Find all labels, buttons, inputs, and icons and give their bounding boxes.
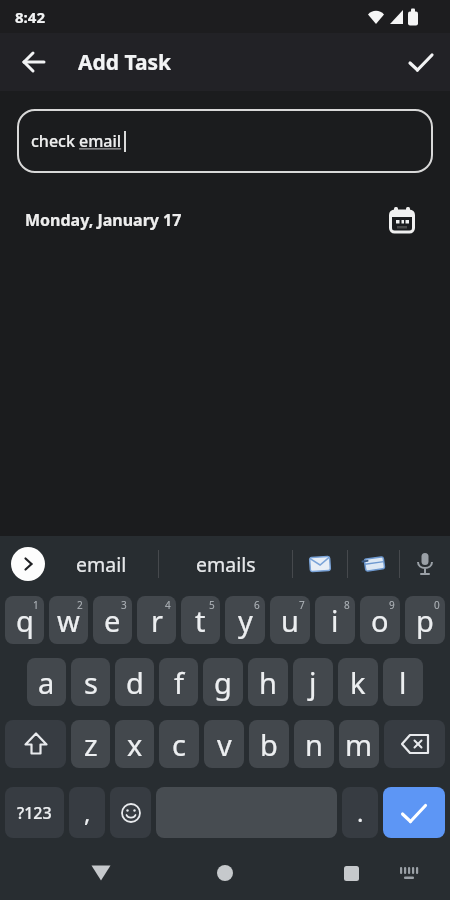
staticText: e xyxy=(104,601,121,640)
button[interactable]: t xyxy=(181,596,220,644)
staticText: 5 xyxy=(209,598,215,612)
staticText: z xyxy=(84,725,98,764)
button[interactable]: Monday, January 17 xyxy=(0,206,450,234)
button[interactable]: q xyxy=(5,596,44,644)
button[interactable] xyxy=(348,536,399,592)
button[interactable]: email xyxy=(45,536,158,592)
staticText: s xyxy=(84,663,98,702)
button[interactable]: , xyxy=(69,787,105,838)
staticText: a xyxy=(38,663,55,702)
staticText: 7 xyxy=(299,598,305,612)
staticText: l xyxy=(399,663,407,702)
staticText: v xyxy=(217,725,232,764)
button[interactable] xyxy=(5,720,66,768)
staticText: g xyxy=(214,663,232,702)
staticText: check email xyxy=(31,130,122,152)
staticText: ?123 xyxy=(17,802,52,824)
button[interactable]: p xyxy=(405,596,445,644)
button[interactable]: l xyxy=(383,658,423,706)
button[interactable]: check email xyxy=(17,109,433,173)
staticText: 8 xyxy=(344,598,350,612)
staticText: f xyxy=(174,663,184,702)
button[interactable]: e xyxy=(93,596,132,644)
button[interactable]: v xyxy=(204,720,244,768)
button[interactable]: g xyxy=(203,658,243,706)
staticText: j xyxy=(309,663,317,702)
button[interactable]: h xyxy=(248,658,288,706)
staticText: n xyxy=(305,725,323,764)
button[interactable]: x xyxy=(115,720,154,768)
button[interactable]: c xyxy=(159,720,199,768)
button[interactable] xyxy=(383,787,445,838)
button[interactable]: b xyxy=(249,720,289,768)
staticText: Add Task xyxy=(78,48,172,77)
button[interactable]: d xyxy=(115,658,154,706)
staticText: o xyxy=(371,601,389,640)
staticText: 6 xyxy=(254,598,260,612)
button[interactable]: y xyxy=(225,596,265,644)
staticText: 1 xyxy=(33,598,39,612)
staticText: d xyxy=(126,663,144,702)
button[interactable] xyxy=(22,50,46,74)
staticText: 4 xyxy=(165,598,171,612)
staticText: m xyxy=(345,725,373,764)
staticText: 2 xyxy=(77,598,83,612)
button[interactable] xyxy=(87,859,115,887)
button[interactable]: f xyxy=(159,658,198,706)
staticText: 8:42 xyxy=(15,7,45,27)
button[interactable]: n xyxy=(294,720,334,768)
staticText: email xyxy=(76,551,127,578)
staticText: w xyxy=(57,601,80,640)
staticText: b xyxy=(260,725,278,764)
button[interactable]: s xyxy=(71,658,110,706)
staticText: i xyxy=(331,601,339,640)
staticText: p xyxy=(416,601,434,640)
staticText: 0 xyxy=(434,598,440,612)
button[interactable]: w xyxy=(49,596,88,644)
button[interactable] xyxy=(408,49,434,75)
button[interactable] xyxy=(337,859,365,887)
staticText: , xyxy=(84,796,91,829)
staticText: u xyxy=(281,601,299,640)
staticText: y xyxy=(238,601,253,640)
staticText: x xyxy=(127,725,143,764)
button[interactable]: u xyxy=(270,596,310,644)
staticText: r xyxy=(151,601,163,640)
staticText: h xyxy=(259,663,277,702)
button[interactable] xyxy=(11,547,45,581)
button[interactable]: i xyxy=(315,596,355,644)
staticText: emails xyxy=(196,551,256,578)
button[interactable]: z xyxy=(71,720,110,768)
staticText: 9 xyxy=(389,598,395,612)
button[interactable] xyxy=(293,536,347,592)
button[interactable]: r xyxy=(137,596,176,644)
button[interactable]: o xyxy=(360,596,400,644)
staticText: 3 xyxy=(121,598,127,612)
button[interactable]: k xyxy=(338,658,378,706)
button[interactable] xyxy=(384,720,445,768)
staticText: Monday, January 17 xyxy=(25,209,182,231)
button[interactable]: ?123 xyxy=(5,787,64,838)
button[interactable] xyxy=(400,536,450,592)
button[interactable] xyxy=(211,859,239,887)
staticText: k xyxy=(350,663,366,702)
button[interactable]: a xyxy=(27,658,66,706)
button[interactable]: . xyxy=(342,787,378,838)
staticText: t xyxy=(195,601,206,640)
button[interactable]: j xyxy=(293,658,333,706)
button[interactable] xyxy=(397,861,421,885)
staticText: c xyxy=(172,725,186,764)
button[interactable] xyxy=(110,787,151,838)
button[interactable]: m xyxy=(339,720,379,768)
staticText: q xyxy=(16,601,34,640)
staticText: . xyxy=(357,796,364,829)
button[interactable]: emails xyxy=(159,536,292,592)
